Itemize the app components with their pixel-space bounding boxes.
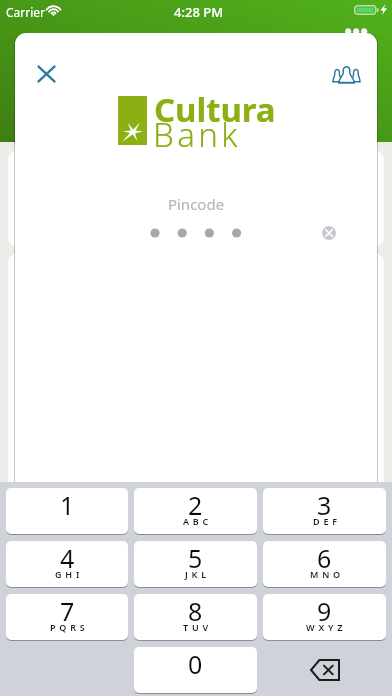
staticText: PQRS: [50, 621, 89, 633]
staticText: 8: [188, 594, 203, 628]
staticText: GHI: [55, 568, 84, 580]
button[interactable]: 8: [134, 594, 257, 640]
staticText: 4: [60, 541, 75, 575]
button[interactable]: 6: [263, 541, 386, 587]
button[interactable]: 9: [263, 594, 386, 640]
button[interactable]: Contacts: [325, 53, 367, 95]
button[interactable]: 3: [263, 488, 386, 534]
button[interactable]: 7: [6, 594, 128, 640]
button[interactable]: Close: [25, 53, 67, 95]
button[interactable]: Clear: [308, 212, 349, 253]
button[interactable]: 4: [6, 541, 128, 587]
button[interactable]: 1: [6, 488, 128, 534]
staticText: MNO: [310, 568, 344, 580]
staticText: Bank: [153, 112, 242, 157]
staticText: 0: [188, 647, 203, 681]
staticText: 4:28 PM: [174, 3, 224, 21]
staticText: 6: [317, 541, 332, 575]
staticText: JKL: [185, 568, 210, 580]
staticText: 3: [317, 488, 332, 522]
button[interactable]: Backspace: [263, 647, 386, 693]
button[interactable]: 0: [134, 647, 257, 693]
staticText: Carrier: [6, 4, 46, 20]
staticText: 7: [60, 594, 75, 628]
staticText: 9: [317, 594, 332, 628]
button[interactable]: 2: [134, 488, 257, 534]
staticText: DEF: [313, 515, 341, 527]
button[interactable]: 5: [134, 541, 257, 587]
staticText: 5: [188, 541, 203, 575]
staticText: Pincode: [15, 194, 377, 214]
staticText: TUV: [183, 621, 212, 633]
staticText: 2: [188, 488, 203, 522]
staticText: ABC: [183, 515, 213, 527]
staticText: 1: [60, 488, 75, 522]
staticText: WXYZ: [306, 621, 347, 633]
staticText: Cultura: [154, 87, 276, 132]
